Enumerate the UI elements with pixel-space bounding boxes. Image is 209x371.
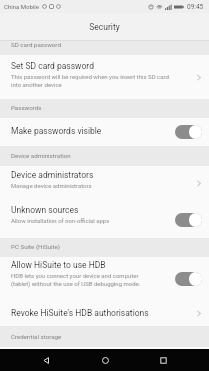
button[interactable]: Allow HiSuite to use HDB <box>0 257 209 300</box>
staticText: SD card password <box>11 41 61 48</box>
button[interactable]: Make passwords visible <box>0 118 209 146</box>
staticText: This password will be required when you … <box>11 73 180 88</box>
staticText: PC Suite (HiSuite) <box>11 243 60 250</box>
staticText: China Mobile <box>4 3 39 10</box>
button[interactable]: Recent apps <box>150 349 176 371</box>
staticText: Revoke HiSuite's HDB authorisations <box>11 308 149 318</box>
button[interactable]: Set SD card password <box>0 55 209 99</box>
button[interactable]: Unknown sources <box>0 201 209 238</box>
staticText: Allow installation of non-official apps <box>11 217 110 224</box>
staticText: 09:45 <box>187 3 204 11</box>
staticText: Device administrators <box>11 170 94 180</box>
staticText: Unknown sources <box>11 205 79 215</box>
staticText: Passwords <box>11 104 42 111</box>
staticText: HDB lets you connect your device and com… <box>11 272 157 287</box>
button[interactable]: Back <box>33 349 59 371</box>
staticText: Security <box>89 22 120 32</box>
staticText: Credential storage <box>11 333 62 340</box>
button[interactable]: Revoke HiSuite's HDB authorisations <box>0 300 209 326</box>
staticText: Manage device administrators <box>11 182 92 189</box>
staticText: Device administration <box>11 152 71 159</box>
button[interactable]: Device administrators <box>0 166 209 201</box>
staticText: Allow HiSuite to use HDB <box>11 260 106 270</box>
staticText: Set SD card password <box>11 61 94 71</box>
staticText: Make passwords visible <box>11 126 102 136</box>
button[interactable]: Home <box>92 349 118 371</box>
